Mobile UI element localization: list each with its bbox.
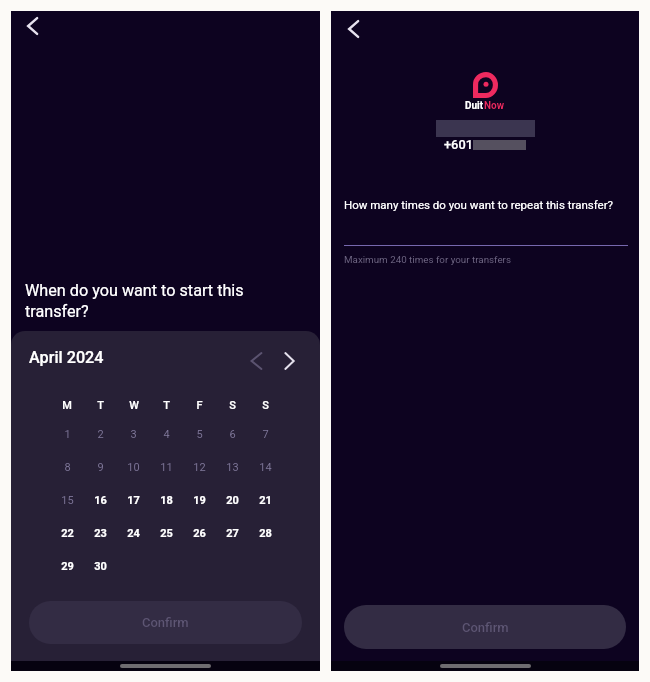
button[interactable]: 1 [50,426,84,442]
staticText: 4 [163,428,170,441]
staticText: 17 [127,494,140,507]
staticText: S [229,399,236,412]
button[interactable]: 24 [117,525,150,541]
button[interactable]: 15 [50,492,84,508]
button[interactable]: 19 [183,492,216,508]
button[interactable]: Previous month [240,346,273,376]
staticText: Duit [465,100,484,112]
button[interactable]: 18 [150,492,183,508]
staticText: 2 [97,428,104,441]
button[interactable]: 28 [249,525,282,541]
staticText: T [163,399,170,412]
staticText: 21 [259,494,272,507]
staticText: 3 [130,428,137,441]
staticText: Maximum 240 times for your transfers [344,254,511,265]
button[interactable]: 21 [249,492,282,508]
button[interactable]: 22 [50,525,84,541]
staticText: 30 [94,560,107,573]
button[interactable]: 11 [150,459,183,475]
button[interactable]: 3 [117,426,150,442]
staticText: S [262,399,269,412]
staticText: W [129,399,139,412]
button[interactable]: Back [15,9,49,43]
button[interactable]: 14 [249,459,282,475]
staticText: 5 [196,428,203,441]
staticText: 24 [127,527,140,540]
button[interactable]: 5 [183,426,216,442]
button[interactable]: Confirm [344,605,626,649]
staticText: 11 [160,461,173,474]
staticText: 28 [259,527,272,540]
button[interactable]: 10 [117,459,150,475]
staticText: 15 [61,494,74,507]
button[interactable]: 2 [84,426,117,442]
button[interactable]: Next month [273,346,306,376]
staticText: 12 [193,461,206,474]
staticText: 14 [259,461,272,474]
staticText: 19 [193,494,206,507]
button[interactable]: 29 [50,558,84,574]
button[interactable]: Confirm [29,601,302,644]
button[interactable]: 27 [216,525,249,541]
staticText: 9 [97,461,104,474]
button[interactable]: 7 [249,426,282,442]
button[interactable]: 13 [216,459,249,475]
staticText: T [97,399,104,412]
staticText: 23 [94,527,107,540]
staticText: 27 [226,527,239,540]
staticText: 22 [61,527,74,540]
button[interactable]: 30 [84,558,117,574]
staticText: 7 [262,428,269,441]
button[interactable]: 25 [150,525,183,541]
button[interactable]: 16 [84,492,117,508]
staticText: 20 [226,494,239,507]
button[interactable]: 6 [216,426,249,442]
button[interactable]: Back [336,12,370,46]
button[interactable]: 23 [84,525,117,541]
staticText: 1 [64,428,71,441]
staticText: 6 [229,428,236,441]
button[interactable]: 17 [117,492,150,508]
staticText: +601 [444,137,473,152]
staticText: M [62,399,72,412]
staticText: Now [484,100,505,112]
staticText: 25 [160,527,173,540]
staticText: When do you want to start this transfer? [25,281,324,321]
button[interactable]: 4 [150,426,183,442]
staticText: 29 [61,560,74,573]
staticText: 18 [160,494,173,507]
staticText: 13 [226,461,239,474]
staticText: Confirm [142,615,189,630]
button[interactable]: 8 [50,459,84,475]
staticText: F [196,399,203,412]
staticText: 10 [127,461,140,474]
button[interactable]: 12 [183,459,216,475]
staticText: 26 [193,527,206,540]
staticText: 8 [64,461,71,474]
button[interactable]: 26 [183,525,216,541]
button[interactable]: 20 [216,492,249,508]
staticText: Confirm [462,620,509,635]
staticText: How many times do you want to repeat thi… [344,198,648,211]
staticText: April 2024 [29,348,104,367]
button[interactable]: 9 [84,459,117,475]
staticText: 16 [94,494,107,507]
